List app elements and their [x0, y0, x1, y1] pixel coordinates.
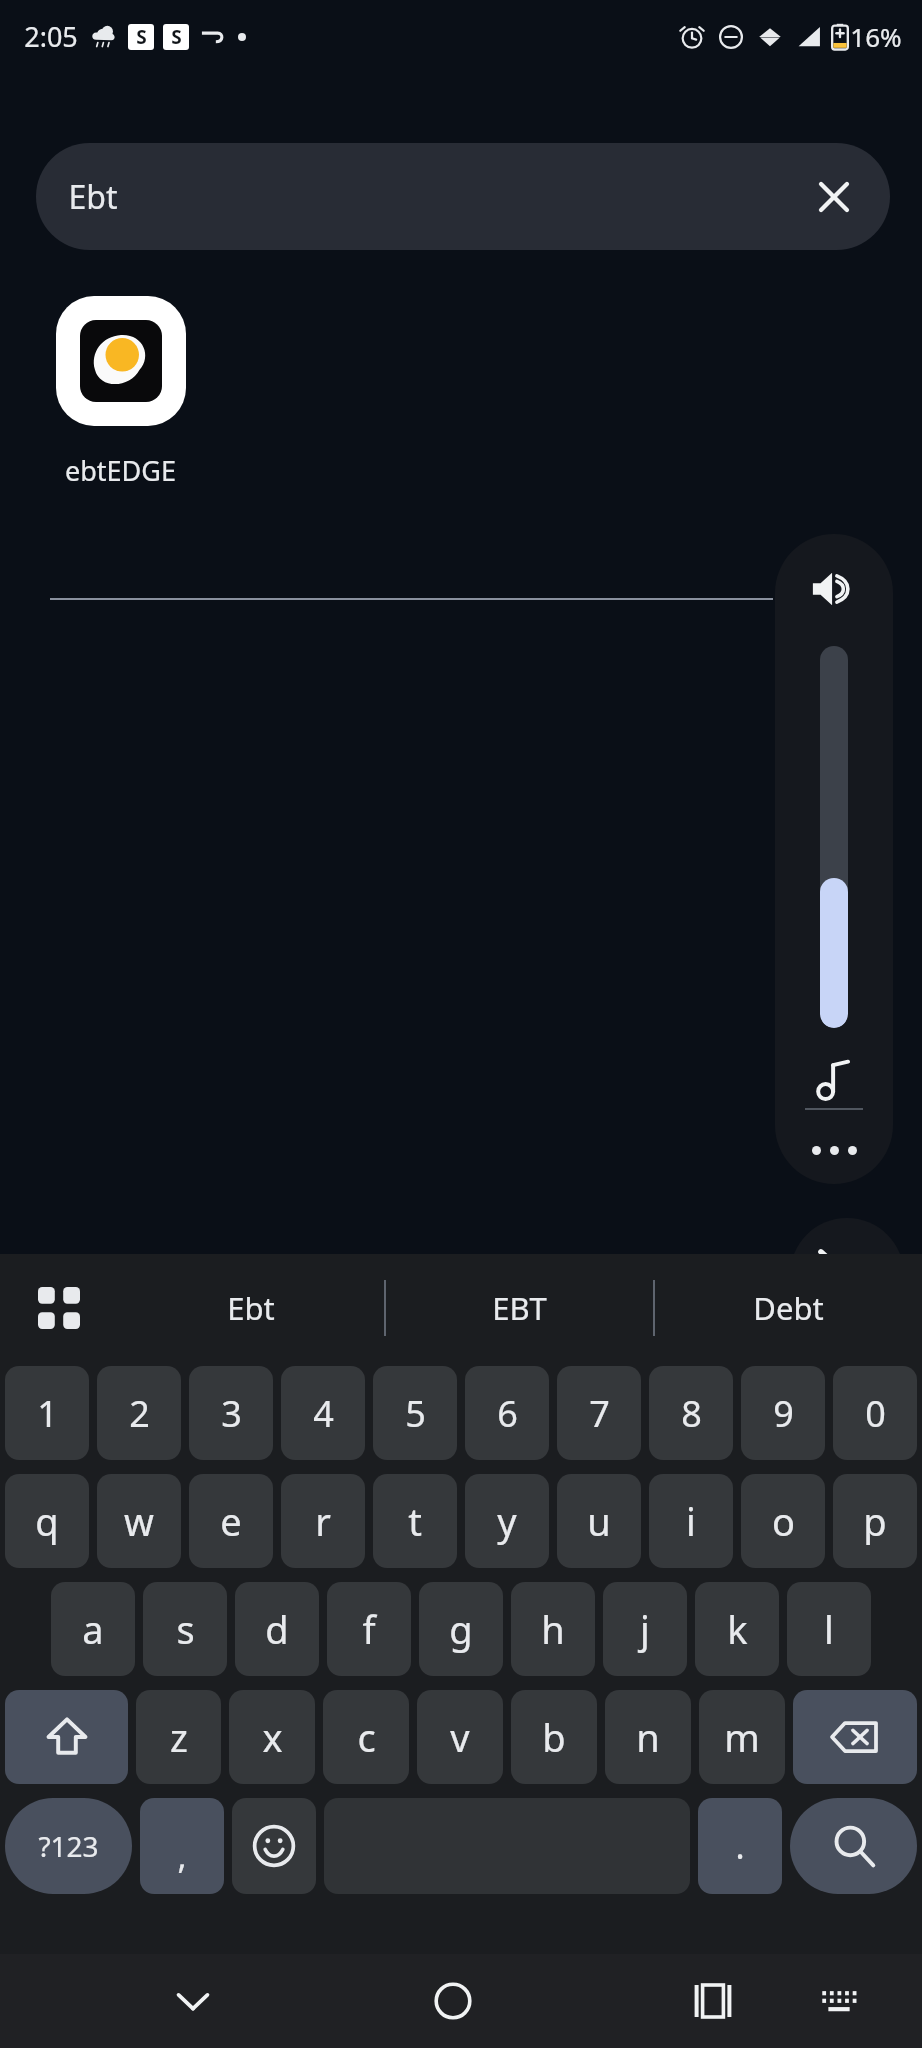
staticText: w	[124, 1495, 154, 1547]
button[interactable]: v	[417, 1690, 503, 1784]
button[interactable]: o	[741, 1474, 825, 1568]
staticText: .	[735, 1823, 745, 1869]
button[interactable]: .	[698, 1798, 782, 1894]
staticText: ebtEDGE	[65, 452, 176, 489]
button[interactable]: Ebt	[118, 1254, 384, 1362]
button[interactable]: w	[97, 1474, 181, 1568]
button[interactable]: Search	[790, 1798, 917, 1894]
button[interactable]: 3	[189, 1366, 273, 1460]
button[interactable]: Volume	[805, 560, 863, 618]
button[interactable]: Emoji	[232, 1798, 316, 1894]
button[interactable]: 0	[833, 1366, 917, 1460]
button[interactable]: x	[229, 1690, 315, 1784]
staticText: i	[686, 1495, 696, 1547]
staticText: 3	[221, 1389, 242, 1438]
staticText: Ebt	[227, 1287, 275, 1329]
button[interactable]: Switch keyboard	[796, 1958, 882, 2044]
staticText: 8	[681, 1389, 702, 1438]
button[interactable]: Clear search	[798, 161, 870, 233]
button[interactable]: z	[136, 1690, 221, 1784]
button[interactable]: Recent apps	[670, 1958, 756, 2044]
staticText: 16%	[850, 19, 902, 54]
staticText: v	[450, 1711, 470, 1763]
staticText: 2	[129, 1389, 150, 1438]
staticText: u	[587, 1495, 611, 1547]
staticText: S	[136, 24, 147, 50]
staticText: S	[171, 24, 182, 50]
button[interactable]: r	[281, 1474, 365, 1568]
staticText: z	[170, 1711, 188, 1763]
staticText: 4	[313, 1389, 334, 1438]
staticText: 1	[37, 1389, 58, 1438]
staticText: f	[362, 1603, 376, 1655]
staticText: a	[82, 1603, 104, 1655]
button[interactable]: d	[235, 1582, 319, 1676]
staticText: p	[863, 1495, 887, 1547]
button[interactable]: g	[419, 1582, 503, 1676]
button[interactable]: Shift	[5, 1690, 128, 1784]
button[interactable]: Captions off	[790, 1218, 904, 1332]
staticText: n	[636, 1711, 660, 1763]
button[interactable]: a	[51, 1582, 135, 1676]
button[interactable]: 4	[281, 1366, 365, 1460]
button[interactable]: s	[143, 1582, 227, 1676]
button[interactable]: c	[323, 1690, 409, 1784]
staticText: b	[542, 1711, 566, 1763]
button[interactable]: b	[511, 1690, 597, 1784]
button[interactable]: p	[833, 1474, 917, 1568]
staticText: k	[727, 1603, 748, 1655]
button[interactable]: Volume slider	[820, 646, 848, 1028]
button[interactable]: 1	[5, 1366, 89, 1460]
staticText: g	[449, 1603, 473, 1655]
button[interactable]: t	[373, 1474, 457, 1568]
button[interactable]: 9	[741, 1366, 825, 1460]
button[interactable]: Home	[410, 1958, 496, 2044]
button[interactable]: Media output	[805, 1052, 863, 1110]
staticText: h	[541, 1603, 565, 1655]
button[interactable]: n	[605, 1690, 691, 1784]
button[interactable]: e	[189, 1474, 273, 1568]
button[interactable]: More volume settings	[806, 1122, 862, 1178]
button[interactable]: i	[649, 1474, 733, 1568]
staticText: Debt	[753, 1287, 824, 1329]
staticText: 5	[405, 1389, 426, 1438]
button[interactable]: Debt	[655, 1254, 922, 1362]
button[interactable]: m	[699, 1690, 785, 1784]
staticText: x	[262, 1711, 283, 1763]
staticText: 9	[773, 1389, 794, 1438]
staticText: 6	[497, 1389, 518, 1438]
button[interactable]: f	[327, 1582, 411, 1676]
button[interactable]: y	[465, 1474, 549, 1568]
button[interactable]: Toolbar	[0, 1254, 118, 1362]
staticText: Ebt	[68, 175, 118, 219]
button[interactable]: ?123	[5, 1798, 132, 1894]
button[interactable]: j	[603, 1582, 687, 1676]
button[interactable]: 6	[465, 1366, 549, 1460]
staticText: 2:05	[24, 18, 78, 55]
staticText: d	[265, 1603, 289, 1655]
button[interactable]: u	[557, 1474, 641, 1568]
button[interactable]: EBT	[386, 1254, 653, 1362]
staticText: EBT	[492, 1287, 547, 1329]
button[interactable]: h	[511, 1582, 595, 1676]
button[interactable]: Backspace	[793, 1690, 917, 1784]
button[interactable]: 5	[373, 1366, 457, 1460]
staticText: l	[824, 1603, 834, 1655]
staticText: s	[176, 1603, 195, 1655]
button[interactable]: 2	[97, 1366, 181, 1460]
button[interactable]: q	[5, 1474, 89, 1568]
staticText: 7	[589, 1389, 610, 1438]
button[interactable]: 7	[557, 1366, 641, 1460]
button[interactable]: l	[787, 1582, 871, 1676]
button[interactable]: 8	[649, 1366, 733, 1460]
button[interactable]: Ebt	[36, 143, 890, 250]
button[interactable]: ebtEDGE	[48, 296, 193, 489]
button[interactable]: Hide keyboard	[150, 1958, 236, 2044]
staticText: 0	[865, 1389, 886, 1438]
staticText: m	[724, 1711, 760, 1763]
staticText: q	[35, 1495, 59, 1547]
staticText: t	[408, 1495, 422, 1547]
button[interactable]: k	[695, 1582, 779, 1676]
button[interactable]: ,	[140, 1798, 224, 1894]
